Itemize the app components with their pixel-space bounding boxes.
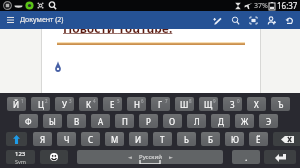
staticText: В xyxy=(74,116,80,127)
staticText: М xyxy=(111,134,119,145)
staticText: 3 xyxy=(69,98,72,104)
staticText: Новости YouTube: xyxy=(63,20,173,36)
staticText: Х xyxy=(254,99,259,110)
button[interactable]: Undo xyxy=(282,12,297,29)
button[interactable]: А xyxy=(91,114,110,128)
button[interactable]: . xyxy=(232,150,260,164)
staticText: Документ (2) xyxy=(20,15,64,25)
staticText: П xyxy=(122,116,128,127)
staticText: Б xyxy=(208,134,213,145)
button[interactable]: Н xyxy=(127,97,146,111)
staticText: Э xyxy=(266,116,272,127)
staticText: И xyxy=(135,134,142,145)
button[interactable]: Enter xyxy=(264,150,296,164)
button[interactable]: Б xyxy=(201,132,220,146)
staticText: 6 xyxy=(141,98,144,104)
button[interactable]: ◄ xyxy=(77,150,223,164)
button[interactable]: Е xyxy=(103,97,122,111)
staticText: А xyxy=(98,116,104,127)
staticText: Ф xyxy=(25,116,32,127)
button[interactable]: Й xyxy=(7,97,26,111)
button[interactable]: У xyxy=(55,97,74,111)
staticText: 123 xyxy=(15,150,26,158)
staticText: Sym xyxy=(15,158,26,164)
button[interactable]: Ъ xyxy=(271,97,290,111)
button[interactable]: Ц xyxy=(31,97,50,111)
staticText: Е xyxy=(110,99,115,110)
staticText: ◄ xyxy=(128,154,132,160)
button[interactable]: О xyxy=(163,114,182,128)
button[interactable]: Ю xyxy=(225,132,244,146)
staticText: Русский xyxy=(139,153,162,161)
staticText: Ц xyxy=(38,99,44,110)
button[interactable]: З xyxy=(223,97,242,111)
button[interactable]: Menu xyxy=(4,12,16,28)
button[interactable]: И xyxy=(129,132,148,146)
staticText: Л xyxy=(194,116,200,127)
staticText: . xyxy=(245,151,248,163)
staticText: Н xyxy=(134,99,140,110)
staticText: 16:37 xyxy=(277,0,298,11)
button[interactable]: Р xyxy=(139,114,158,128)
staticText: Ъ xyxy=(278,99,284,110)
button[interactable]: В xyxy=(67,114,86,128)
button[interactable]: Ч xyxy=(57,132,76,146)
button[interactable]: Г xyxy=(151,97,170,111)
button[interactable]: К xyxy=(79,97,98,111)
button[interactable]: Д xyxy=(211,114,230,128)
button[interactable]: Ф xyxy=(19,114,38,128)
staticText: 8 xyxy=(189,98,192,104)
staticText: 9 xyxy=(213,98,216,104)
staticText: С xyxy=(88,134,94,145)
staticText: Ж xyxy=(241,116,249,127)
staticText: Щ xyxy=(204,99,213,110)
button[interactable]: Я xyxy=(33,132,52,146)
button[interactable]: Shift xyxy=(6,132,27,146)
staticText: 1 xyxy=(21,98,24,104)
button[interactable]: Edit xyxy=(210,12,225,29)
button[interactable]: Present xyxy=(246,12,261,29)
button[interactable]: Ж xyxy=(235,114,254,128)
staticText: Ч xyxy=(64,134,70,145)
staticText: Ё xyxy=(256,134,261,145)
button[interactable]: П xyxy=(115,114,134,128)
staticText: 2 xyxy=(45,98,48,104)
button[interactable]: 123 xyxy=(6,150,35,164)
button[interactable]: Т xyxy=(153,132,172,146)
button[interactable]: Э xyxy=(259,114,278,128)
button[interactable]: С xyxy=(81,132,100,146)
staticText: Ш xyxy=(180,99,189,110)
staticText: Р xyxy=(146,116,151,127)
staticText: З xyxy=(230,99,235,110)
staticText: Ю xyxy=(231,134,239,145)
button[interactable]: Ы xyxy=(43,114,62,128)
button[interactable]: Emoji xyxy=(40,150,68,164)
button[interactable]: Add collaborator xyxy=(264,12,279,29)
staticText: 37% xyxy=(254,1,268,11)
staticText: Ы xyxy=(49,116,56,127)
staticText: ► xyxy=(169,154,173,160)
button[interactable]: М xyxy=(105,132,124,146)
button[interactable]: Х xyxy=(247,97,266,111)
staticText: О xyxy=(169,116,176,127)
staticText: Т xyxy=(160,134,165,145)
staticText: Г xyxy=(158,99,163,110)
button[interactable]: Ё xyxy=(249,132,268,146)
staticText: 0 xyxy=(237,98,240,104)
button[interactable]: Search xyxy=(228,12,243,29)
staticText: Я xyxy=(40,134,46,145)
staticText: К xyxy=(86,99,91,110)
button[interactable]: Ш xyxy=(175,97,194,111)
staticText: Д xyxy=(218,116,224,127)
button[interactable]: Backspace xyxy=(273,132,300,146)
button[interactable]: Л xyxy=(187,114,206,128)
button[interactable]: Щ xyxy=(199,97,218,111)
staticText: Ь xyxy=(184,134,189,145)
button[interactable]: Ь xyxy=(177,132,196,146)
staticText: У xyxy=(62,99,67,110)
staticText: 5 xyxy=(117,98,120,104)
staticText: Й xyxy=(13,99,20,110)
staticText: 7 xyxy=(165,98,168,104)
staticText: 4 xyxy=(93,98,96,104)
